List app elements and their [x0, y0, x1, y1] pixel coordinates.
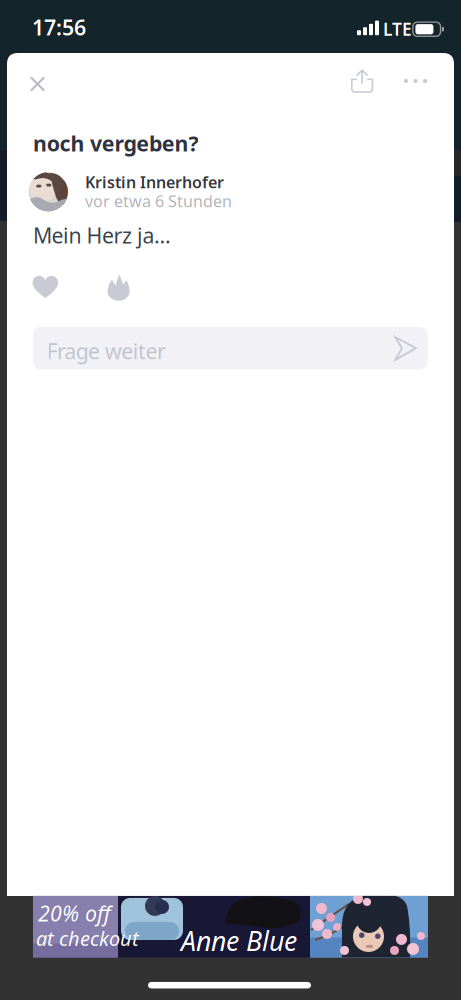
staticText: 17:56 [32, 13, 86, 41]
button[interactable]: Ad [33, 896, 428, 957]
staticText: 20% off [38, 899, 111, 927]
button[interactable]: Share [346, 64, 378, 99]
staticText: Anne Blue [181, 923, 297, 958]
button[interactable]: Close [22, 68, 53, 100]
button[interactable]: More [396, 71, 435, 91]
staticText: noch vergeben? [33, 129, 198, 157]
staticText: vor etwa 6 Stunden [85, 190, 232, 212]
button[interactable]: Hot [102, 268, 136, 307]
staticText: Frage weiter [46, 337, 166, 365]
staticText: Mein Herz ja... [33, 221, 171, 249]
staticText: LTE [383, 17, 412, 40]
staticText: Kristin Innerhofer [85, 171, 224, 193]
button[interactable]: Like [26, 270, 64, 304]
button[interactable]: Frage weiter [33, 327, 428, 369]
staticText: at checkout [36, 925, 139, 952]
